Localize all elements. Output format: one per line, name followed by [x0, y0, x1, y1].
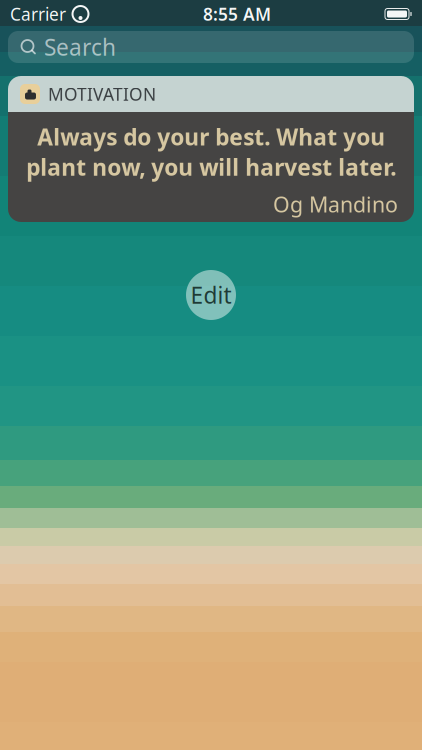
staticText: Always do your best. What you plant now,… [26, 122, 396, 182]
staticText: 8:55 AM [203, 2, 271, 25]
staticText: Carrier [10, 2, 66, 25]
staticText: Edit [190, 280, 231, 310]
staticText: MOTIVATION [48, 82, 156, 105]
button[interactable]: Motivation widget [8, 76, 414, 222]
button[interactable]: Edit [186, 270, 236, 320]
staticText: Search [44, 32, 116, 62]
button[interactable]: Search [8, 31, 414, 63]
staticText: Og Mandino [273, 190, 398, 218]
